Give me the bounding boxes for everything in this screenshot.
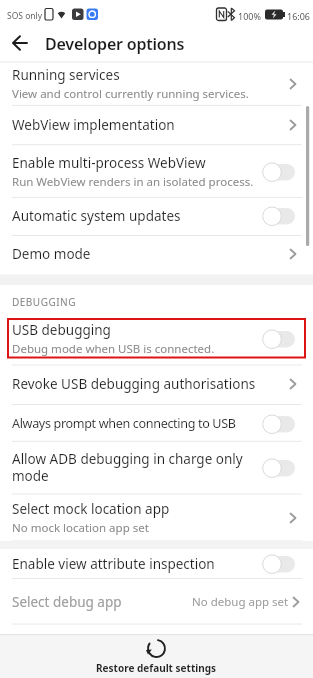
button[interactable]	[0, 28, 48, 62]
staticText: Enable multi-process WebView	[12, 154, 206, 172]
staticText: USB debugging	[12, 321, 111, 339]
staticText: Developer options	[45, 33, 185, 55]
staticText: Automatic system updates	[12, 207, 181, 225]
staticText: No debug app set	[192, 594, 289, 610]
staticText: Run WebView renders in an isolated proce…	[12, 174, 254, 190]
staticText: Select debug app	[12, 593, 122, 611]
button[interactable]: Enable multi-process WebView	[0, 145, 313, 198]
staticText: Revoke USB debugging authorisations	[12, 375, 256, 393]
button[interactable]: Automatic system updates	[0, 197, 313, 235]
button[interactable]: Demo mode	[0, 236, 313, 272]
staticText: SOS only	[7, 10, 43, 22]
button[interactable]: Running services	[0, 62, 313, 105]
button[interactable]: Revoke USB debugging authorisations	[0, 362, 313, 405]
staticText: No mock location app set	[12, 520, 149, 536]
staticText: Debug mode when USB is connected.	[12, 341, 215, 357]
button[interactable]: Allow ADB debugging in charge only mode	[0, 441, 313, 494]
staticText: 100%	[238, 10, 261, 22]
staticText: View and control currently running servi…	[12, 86, 249, 102]
button[interactable]: USB debugging	[0, 313, 313, 365]
button[interactable]: Select debug app	[0, 579, 313, 625]
button[interactable]: WebView implementation	[0, 105, 313, 144]
button[interactable]: Enable view attribute inspection	[0, 549, 313, 579]
staticText: 16:06	[287, 10, 311, 22]
staticText: Select mock location app	[12, 500, 170, 518]
staticText: DEBUGGING	[12, 295, 76, 309]
staticText: Allow ADB debugging in charge only mode	[12, 450, 243, 485]
staticText: WebView implementation	[12, 116, 175, 134]
button[interactable]: Restore default settings	[66, 635, 246, 678]
staticText: Restore default settings	[96, 661, 217, 675]
button[interactable]: Always prompt when connecting to USB	[0, 405, 313, 442]
staticText: Enable view attribute inspection	[12, 555, 215, 573]
staticText: Demo mode	[12, 245, 91, 263]
button[interactable]: Select mock location app	[0, 494, 313, 542]
staticText: Always prompt when connecting to USB	[12, 415, 236, 432]
staticText: Running services	[12, 66, 120, 84]
